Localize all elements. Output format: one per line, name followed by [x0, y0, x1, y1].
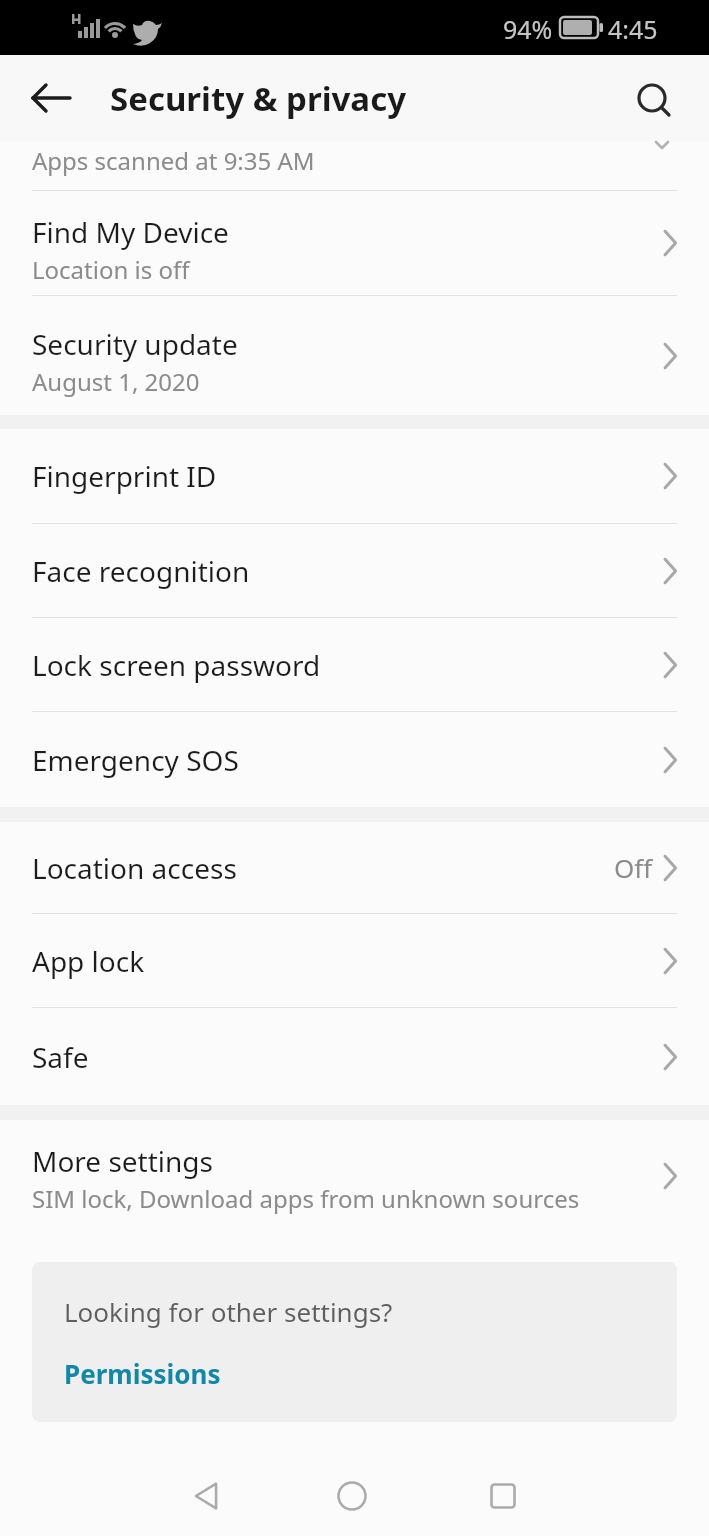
button[interactable]	[182, 1472, 230, 1520]
button[interactable]: More settings	[0, 1120, 709, 1232]
button[interactable]: Security update	[0, 296, 709, 415]
staticText: August 1, 2020	[32, 365, 200, 398]
button[interactable]: Permissions	[64, 1356, 221, 1391]
staticText: SIM lock, Download apps from unknown sou…	[32, 1182, 580, 1215]
staticText: Fingerprint ID	[32, 457, 217, 495]
staticText: Lock screen password	[32, 646, 321, 684]
staticText: Apps scanned at 9:35 AM	[32, 144, 315, 177]
staticText: App lock	[32, 942, 145, 980]
staticText: Looking for other settings?	[64, 1294, 393, 1329]
button[interactable]: Lock screen password	[0, 618, 709, 711]
button[interactable]: Safe	[0, 1008, 709, 1105]
staticText: 94%	[503, 12, 553, 46]
button[interactable]	[631, 74, 679, 122]
button[interactable]: Face recognition	[0, 524, 709, 617]
staticText: Security update	[32, 325, 238, 363]
staticText: Security & privacy	[110, 76, 407, 121]
button[interactable]	[479, 1472, 527, 1520]
button[interactable]: App lock	[0, 914, 709, 1007]
button[interactable]: Fingerprint ID	[0, 429, 709, 523]
staticText: Find My Device	[32, 213, 229, 251]
button[interactable]: Emergency SOS	[0, 712, 709, 807]
staticText: More settings	[32, 1142, 213, 1180]
button[interactable]	[328, 1472, 376, 1520]
staticText: Location access	[32, 849, 237, 887]
button[interactable]: Find My Device	[0, 191, 709, 295]
staticText: Face recognition	[32, 552, 250, 590]
staticText: Emergency SOS	[32, 741, 239, 779]
button[interactable]: Apps scanned at 9:35 AM	[0, 141, 709, 190]
button[interactable]	[26, 74, 74, 122]
staticText: Location is off	[32, 253, 190, 286]
button[interactable]: Looking for other settings?	[32, 1262, 677, 1422]
button[interactable]: Location access	[0, 822, 709, 913]
staticText: 4:45	[608, 12, 658, 46]
staticText: Safe	[32, 1038, 89, 1076]
staticText: Off	[614, 850, 653, 885]
